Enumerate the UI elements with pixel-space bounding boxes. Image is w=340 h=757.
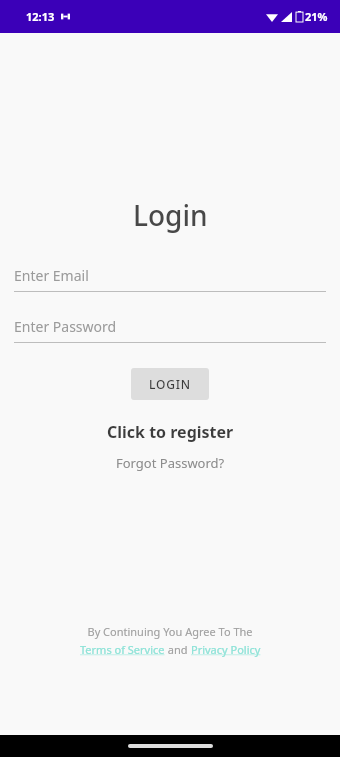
staticText: Forgot Password? xyxy=(116,454,225,472)
staticText: Terms of Service xyxy=(80,642,165,657)
staticText: Enter Password xyxy=(14,317,117,336)
button[interactable]: LOGIN xyxy=(131,368,209,400)
button[interactable]: Enter Password xyxy=(0,317,340,343)
button[interactable]: Privacy Policy xyxy=(191,642,261,657)
button[interactable]: Forgot Password? xyxy=(0,454,340,472)
other: Home gesture bar xyxy=(128,744,213,748)
staticText: LOGIN xyxy=(149,376,191,392)
staticText: Click to register xyxy=(107,421,234,443)
staticText: Enter Email xyxy=(14,266,89,285)
staticText: Privacy Policy xyxy=(191,642,261,657)
staticText: By Continuing You Agree To The xyxy=(87,624,253,639)
staticText: and xyxy=(165,642,191,657)
staticText: Login xyxy=(133,196,208,234)
button[interactable]: Terms of Service xyxy=(80,642,165,657)
staticText: 21% xyxy=(305,9,328,24)
staticText: 12:13 xyxy=(26,9,55,24)
button[interactable]: Enter Email xyxy=(0,266,340,292)
button[interactable]: Click to register xyxy=(0,421,340,443)
